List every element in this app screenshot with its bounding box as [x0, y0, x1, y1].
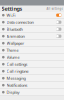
staticText: Call settings — [7, 61, 28, 67]
button[interactable]: Notifications — [0, 82, 64, 89]
staticText: Volume — [7, 54, 20, 60]
button[interactable]: Bluetooth — [0, 26, 64, 33]
staticText: Wallpaper — [7, 40, 25, 46]
button[interactable]: Wallpaper — [0, 40, 64, 47]
staticText: Notifications — [7, 82, 28, 88]
button[interactable]: Call ringtone — [0, 68, 64, 75]
staticText: Theme — [7, 47, 19, 53]
staticText: Messaging — [7, 75, 26, 81]
button[interactable]: All settings — [46, 7, 62, 10]
button[interactable]: Animation — [0, 33, 64, 40]
button[interactable]: Volume — [0, 54, 64, 61]
button[interactable]: Data connection — [0, 19, 64, 26]
button[interactable]: Theme — [0, 47, 64, 54]
staticText: Call ringtone — [7, 68, 29, 74]
button[interactable]: Messaging — [0, 75, 64, 82]
staticText: Display — [7, 89, 20, 95]
staticText: Wi-Fi — [7, 12, 16, 18]
button[interactable]: Wi-Fi — [0, 12, 64, 19]
staticText: Bluetooth — [7, 26, 23, 32]
staticText: Settings — [2, 5, 23, 12]
staticText: All settings — [46, 7, 62, 10]
staticText: Data connection — [7, 19, 34, 25]
staticText: Animation — [7, 33, 25, 39]
button[interactable]: Display — [0, 89, 64, 96]
button[interactable]: Call settings — [0, 61, 64, 68]
